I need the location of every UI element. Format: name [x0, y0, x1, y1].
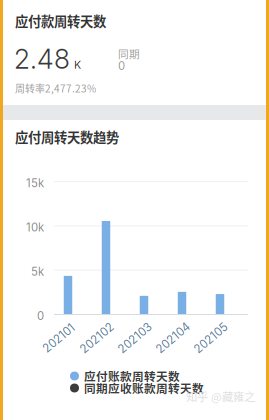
staticText: K	[74, 58, 81, 71]
staticText: 15k	[26, 176, 44, 190]
staticText: 知乎 @藏雍之	[186, 388, 255, 404]
staticText: 应付账款周转天数	[84, 368, 180, 384]
staticText: 周转率2,477.23%	[15, 81, 96, 95]
staticText: 202103	[115, 331, 155, 345]
staticText: 2.48	[14, 43, 70, 75]
staticText: 202104	[153, 331, 193, 345]
staticText: 202102	[77, 331, 117, 345]
staticText: 同期应收账款周转天数	[84, 380, 204, 396]
staticText: 202101	[40, 331, 78, 345]
staticText: 应付款周转天数	[15, 11, 106, 30]
staticText: 应付周转天数趋势	[15, 127, 119, 146]
staticText: 202105	[191, 331, 231, 345]
staticText: 同期	[118, 46, 140, 61]
staticText: 0	[118, 59, 125, 73]
staticText: 5k	[31, 265, 44, 278]
staticText: 10k	[26, 220, 44, 234]
staticText: 0	[37, 309, 44, 323]
